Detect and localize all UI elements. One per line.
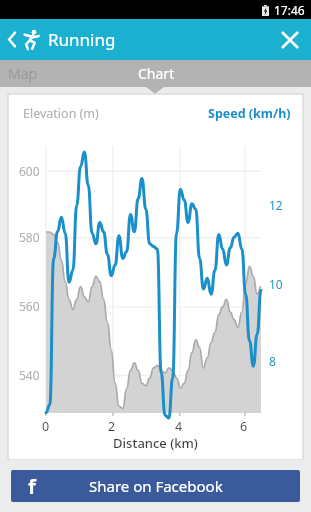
staticText: 560: [19, 298, 40, 314]
button[interactable]: Back: [0, 19, 45, 60]
button[interactable]: Map: [0, 60, 100, 87]
staticText: 0: [42, 418, 50, 435]
staticText: f: [28, 473, 36, 500]
staticText: 10: [269, 276, 283, 292]
button[interactable]: Chart: [104, 60, 208, 87]
staticText: Running: [48, 28, 116, 51]
staticText: Speed (km/h): [208, 105, 291, 122]
staticText: 17:46: [274, 2, 305, 18]
staticText: Share on Facebook: [89, 476, 223, 496]
button[interactable]: Close: [269, 19, 311, 60]
staticText: 4: [175, 418, 183, 435]
staticText: Elevation (m): [23, 105, 99, 122]
staticText: 2: [108, 418, 116, 435]
staticText: 8: [269, 353, 276, 369]
staticText: Chart: [138, 64, 175, 83]
staticText: 6: [240, 418, 248, 435]
staticText: Distance (km): [113, 434, 198, 452]
staticText: 540: [19, 367, 40, 383]
button[interactable]: f: [11, 470, 300, 502]
staticText: 580: [19, 229, 40, 245]
staticText: 12: [269, 197, 283, 213]
staticText: 600: [19, 163, 40, 179]
staticText: Map: [8, 64, 38, 83]
